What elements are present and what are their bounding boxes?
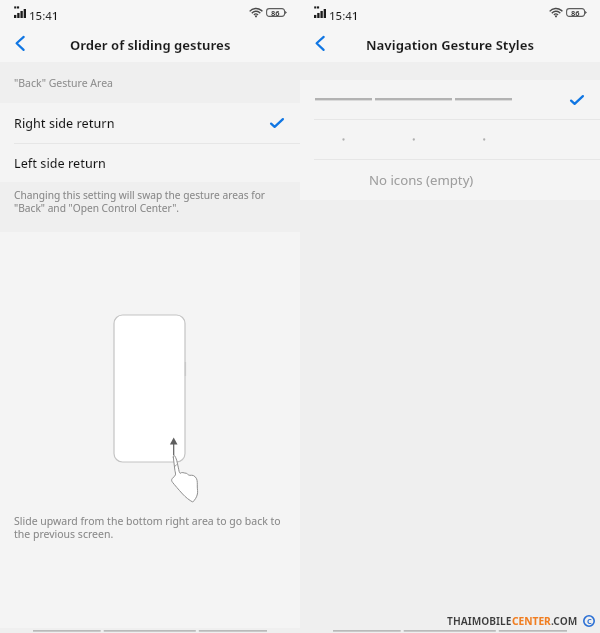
staticText: 86 [571, 8, 580, 17]
staticText: CENTER [512, 614, 551, 628]
staticText: 15:41 [329, 8, 359, 24]
staticText: Left side return [14, 155, 106, 172]
staticText: No icons (empty) [369, 171, 474, 189]
button[interactable]: Back [0, 28, 40, 62]
button[interactable]: Right side return [0, 103, 300, 143]
staticText: Right side return [14, 115, 115, 132]
staticText: .COM [551, 614, 578, 628]
staticText: 15:41 [29, 8, 59, 24]
staticText: THAIMOBILE [447, 614, 512, 628]
staticText: Navigation Gesture Styles [366, 36, 535, 54]
staticText: "Back" Gesture Area [14, 76, 113, 90]
button[interactable]: Left side return [0, 144, 300, 182]
staticText: Slide upward from the bottom right area … [14, 514, 281, 541]
staticText: Changing this setting will swap the gest… [14, 188, 266, 215]
button[interactable]: Back [300, 28, 340, 62]
staticText: Order of sliding gestures [70, 36, 231, 54]
button[interactable] [300, 80, 600, 119]
staticText: C [587, 616, 592, 626]
staticText: 86 [271, 8, 280, 17]
